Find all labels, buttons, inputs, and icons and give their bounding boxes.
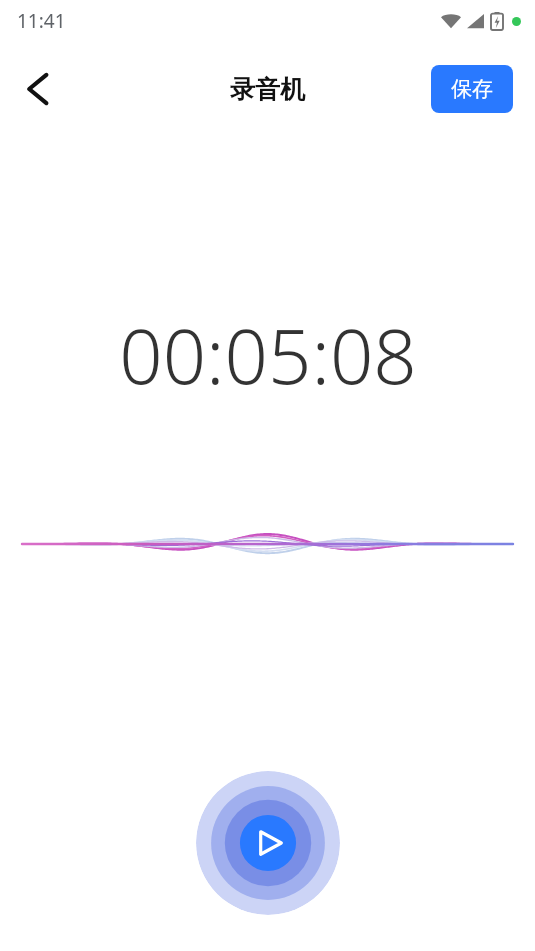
button[interactable]: Back <box>10 61 66 117</box>
button[interactable]: Play <box>196 771 340 915</box>
staticText: 保存 <box>451 76 493 102</box>
button[interactable]: 保存 <box>431 65 513 113</box>
staticText: 11:41 <box>17 8 66 34</box>
staticText: 录音机 <box>230 74 305 105</box>
staticText: 00:05:08 <box>119 303 417 407</box>
